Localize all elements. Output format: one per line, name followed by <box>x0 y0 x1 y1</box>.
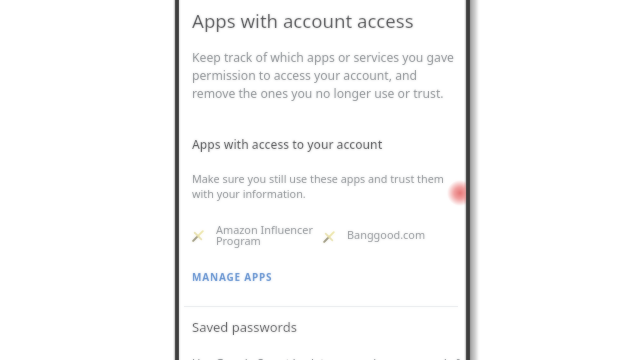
staticText: Keep track of which apps or services you… <box>192 49 454 102</box>
staticText: MANAGE APPS <box>192 270 273 284</box>
button[interactable]: Amazon Influencer Program <box>191 222 317 248</box>
staticText: Apps with access to your account <box>192 136 383 152</box>
staticText: Make sure you still use these apps and t… <box>192 171 444 202</box>
staticText: Amazon Influencer Program <box>216 222 313 248</box>
staticText: Banggood.com <box>347 227 426 242</box>
staticText: Amazon Influencer Program <box>216 222 313 248</box>
staticText: Banggood.com <box>347 227 426 242</box>
staticText: Use Google Smart Lock to remember passwo… <box>192 355 471 360</box>
staticText: Make sure you still use these apps and t… <box>192 171 444 202</box>
button[interactable]: Banggood.com <box>322 227 444 242</box>
staticText: Apps with account access <box>192 8 414 33</box>
staticText: Apps with account access <box>192 8 414 33</box>
button[interactable]: Amazon Influencer Program <box>191 222 317 248</box>
button[interactable]: Banggood.com <box>322 227 444 242</box>
button[interactable]: MANAGE APPS <box>186 265 279 289</box>
staticText: MANAGE APPS <box>192 270 273 284</box>
staticText: Use Google Smart Lock to remember passwo… <box>192 355 471 360</box>
staticText: Apps with access to your account <box>192 136 383 152</box>
staticText: Keep track of which apps or services you… <box>192 49 454 102</box>
staticText: Saved passwords <box>192 318 297 336</box>
button[interactable]: MANAGE APPS <box>186 265 279 289</box>
staticText: Saved passwords <box>192 318 297 336</box>
